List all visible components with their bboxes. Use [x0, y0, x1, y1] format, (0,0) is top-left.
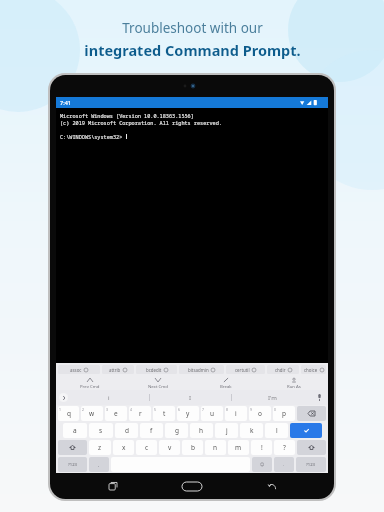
staticText: f	[150, 426, 153, 435]
staticText: i	[235, 409, 237, 418]
button[interactable]: Expand	[59, 393, 68, 402]
staticText: z	[98, 443, 102, 452]
button[interactable]: certutil	[226, 365, 265, 374]
staticText: Run As	[287, 383, 301, 389]
staticText: !	[261, 443, 263, 452]
button[interactable]: y	[177, 406, 199, 421]
button[interactable]: g	[165, 423, 188, 438]
button[interactable]: j	[215, 423, 238, 438]
staticText: 4	[130, 407, 132, 412]
button[interactable]: w	[81, 406, 103, 421]
button[interactable]: r	[129, 406, 151, 421]
staticText: choice	[304, 367, 318, 373]
staticText: k	[250, 426, 254, 435]
button[interactable]: ?	[274, 440, 295, 455]
button[interactable]: bitsadmin	[179, 365, 224, 374]
staticText: 7:41	[60, 99, 71, 106]
staticText: ?123	[68, 462, 78, 468]
staticText: e	[114, 409, 118, 418]
button[interactable]: q	[58, 406, 79, 421]
button[interactable]: ☺	[252, 457, 272, 472]
button[interactable]: Back	[261, 475, 283, 497]
button[interactable]: b	[182, 440, 203, 455]
button[interactable]: i	[225, 406, 247, 421]
button[interactable]: n	[205, 440, 226, 455]
staticText: h	[199, 426, 204, 435]
button[interactable]: k	[240, 423, 263, 438]
staticText: q	[67, 409, 71, 418]
button[interactable]: l	[265, 423, 288, 438]
staticText: b	[191, 443, 195, 452]
staticText: p	[282, 409, 286, 418]
staticText: I	[189, 394, 192, 402]
staticText: 7	[202, 407, 204, 412]
staticText: y	[186, 409, 190, 418]
staticText: r	[139, 409, 142, 418]
button[interactable]: shift	[58, 440, 87, 455]
button[interactable]: attrib	[102, 365, 134, 374]
button[interactable]: Home	[175, 475, 209, 497]
button[interactable]: ?123	[296, 457, 326, 472]
button[interactable]: ?123	[58, 457, 87, 472]
staticText: t	[163, 409, 166, 418]
staticText: 9	[250, 407, 252, 412]
staticText: w	[89, 409, 95, 418]
staticText: attrib	[109, 367, 121, 373]
button[interactable]: c	[136, 440, 157, 455]
button[interactable]: assoc	[58, 365, 100, 374]
staticText: (c) 2019 Microsoft Corporation. All righ…	[60, 119, 222, 126]
button[interactable]: I'm	[232, 390, 313, 405]
staticText: d	[125, 426, 129, 435]
staticText: Microsoft Windows [Version 10.0.18363.15…	[60, 112, 194, 119]
button[interactable]: m	[228, 440, 249, 455]
staticText: 6	[178, 407, 180, 412]
button[interactable]: bksp	[297, 406, 326, 421]
staticText: 0	[274, 407, 276, 412]
button[interactable]: p	[273, 406, 295, 421]
staticText: bcdedit	[146, 367, 162, 373]
button[interactable]: Recents	[102, 475, 124, 497]
button[interactable]: bcdedit	[136, 365, 177, 374]
staticText: o	[258, 409, 262, 418]
button[interactable]: Run As	[260, 376, 328, 390]
button[interactable]: t	[153, 406, 175, 421]
staticText: 3	[106, 407, 108, 412]
button[interactable]: f	[140, 423, 163, 438]
staticText: 2	[82, 407, 84, 412]
staticText: chdir	[275, 367, 286, 373]
button[interactable]: h	[190, 423, 213, 438]
staticText: certutil	[235, 367, 250, 373]
button[interactable]: d	[115, 423, 138, 438]
staticText: 5	[154, 407, 156, 412]
staticText: I'm	[268, 394, 277, 402]
button[interactable]: e	[105, 406, 127, 421]
button[interactable]: Next Cmd	[124, 376, 192, 390]
staticText: Next Cmd	[148, 383, 168, 389]
button[interactable]: !	[251, 440, 272, 455]
button[interactable]: x	[113, 440, 134, 455]
button[interactable]: v	[159, 440, 180, 455]
button[interactable]: a	[63, 423, 87, 438]
button[interactable]: z	[89, 440, 111, 455]
staticText: u	[210, 409, 215, 418]
button[interactable]: Voice input	[313, 390, 325, 405]
button[interactable]: choice	[301, 365, 326, 374]
button[interactable]: o	[249, 406, 271, 421]
button[interactable]: I	[150, 390, 231, 405]
staticText: m	[235, 443, 242, 452]
staticText: ,	[98, 462, 100, 468]
button[interactable]: Prev Cmd	[56, 376, 124, 390]
staticText: j	[226, 426, 228, 435]
button[interactable]: chdir	[267, 365, 299, 374]
button[interactable]: u	[201, 406, 223, 421]
button[interactable]: enter	[290, 423, 322, 438]
button[interactable]: shift	[297, 440, 326, 455]
button[interactable]: s	[89, 423, 113, 438]
button[interactable]: Break	[192, 376, 260, 390]
staticText: c	[145, 443, 149, 452]
staticText: Troubleshoot with our	[122, 19, 263, 37]
